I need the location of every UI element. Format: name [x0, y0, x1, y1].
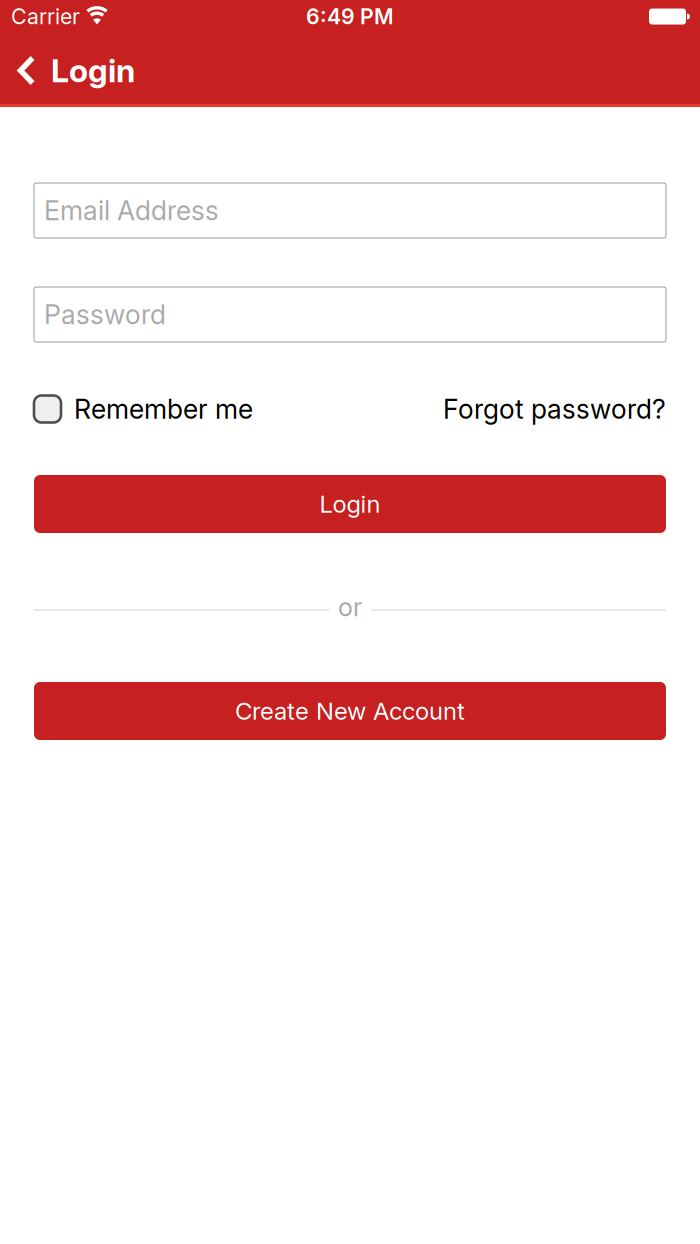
button[interactable]: Login — [34, 475, 666, 533]
button[interactable]: Email Address — [34, 183, 666, 238]
button[interactable]: Password — [34, 287, 666, 342]
button[interactable]: Back — [0, 56, 51, 84]
button[interactable]: Forgot password? — [443, 393, 666, 425]
staticText: Password — [44, 299, 166, 330]
staticText: or — [338, 592, 362, 622]
staticText: Login — [319, 490, 380, 518]
staticText: Remember me — [74, 393, 253, 425]
staticText: Email Address — [44, 195, 219, 226]
button[interactable]: Remember me — [34, 393, 253, 425]
staticText: Login — [51, 52, 135, 89]
staticText: Forgot password? — [443, 393, 666, 425]
staticText: Carrier — [11, 4, 80, 29]
staticText: 6:49 PM — [306, 4, 394, 29]
staticText: Create New Account — [235, 697, 465, 725]
button[interactable]: Create New Account — [34, 682, 666, 740]
